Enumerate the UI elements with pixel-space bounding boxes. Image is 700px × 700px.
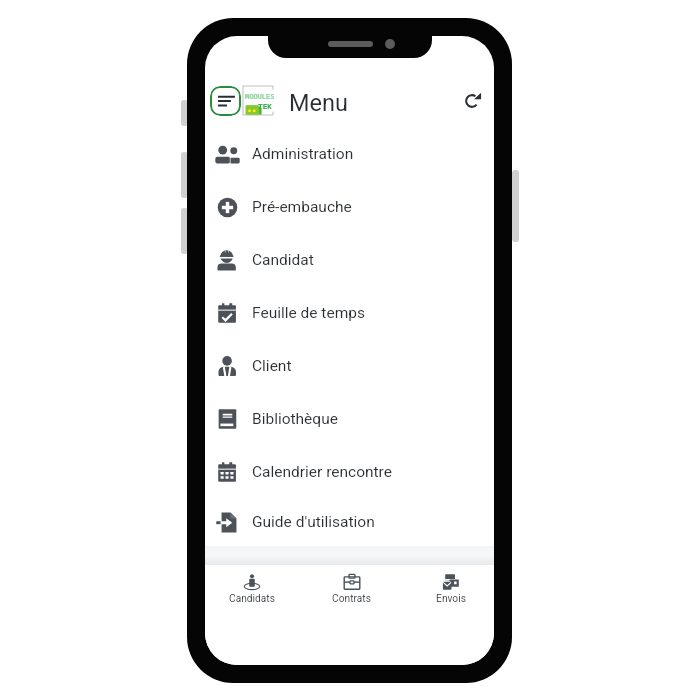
- button[interactable]: Menu: [210, 86, 241, 116]
- staticText: Pré-embauche: [252, 198, 352, 216]
- button[interactable]: Calendrier rencontre: [205, 446, 494, 499]
- staticText: Client: [252, 357, 292, 375]
- staticText: TEK: [258, 101, 273, 112]
- button[interactable]: Contrats: [302, 573, 401, 605]
- button[interactable]: Envois: [401, 573, 494, 605]
- staticText: Feuille de temps: [252, 304, 365, 322]
- button[interactable]: Administration: [205, 128, 494, 181]
- button[interactable]: Candidats: [205, 573, 302, 605]
- staticText: Calendrier rencontre: [252, 463, 392, 481]
- staticText: Candidats: [229, 593, 275, 605]
- button[interactable]: Client: [205, 340, 494, 393]
- button[interactable]: Candidat: [205, 234, 494, 287]
- staticText: Administration: [252, 145, 354, 163]
- button[interactable]: Pré-embauche: [205, 181, 494, 234]
- staticText: Bibliothèque: [252, 410, 338, 428]
- staticText: Guide d'utilisation: [252, 513, 375, 531]
- staticText: MODULES: [245, 92, 275, 102]
- button[interactable]: Guide d'utilisation: [205, 499, 494, 546]
- staticText: Menu: [289, 89, 348, 117]
- staticText: Candidat: [252, 251, 314, 269]
- button[interactable]: Feuille de temps: [205, 287, 494, 340]
- button[interactable]: Refresh: [459, 88, 485, 114]
- staticText: Envois: [436, 593, 466, 605]
- staticText: Contrats: [332, 593, 371, 605]
- button[interactable]: Bibliothèque: [205, 393, 494, 446]
